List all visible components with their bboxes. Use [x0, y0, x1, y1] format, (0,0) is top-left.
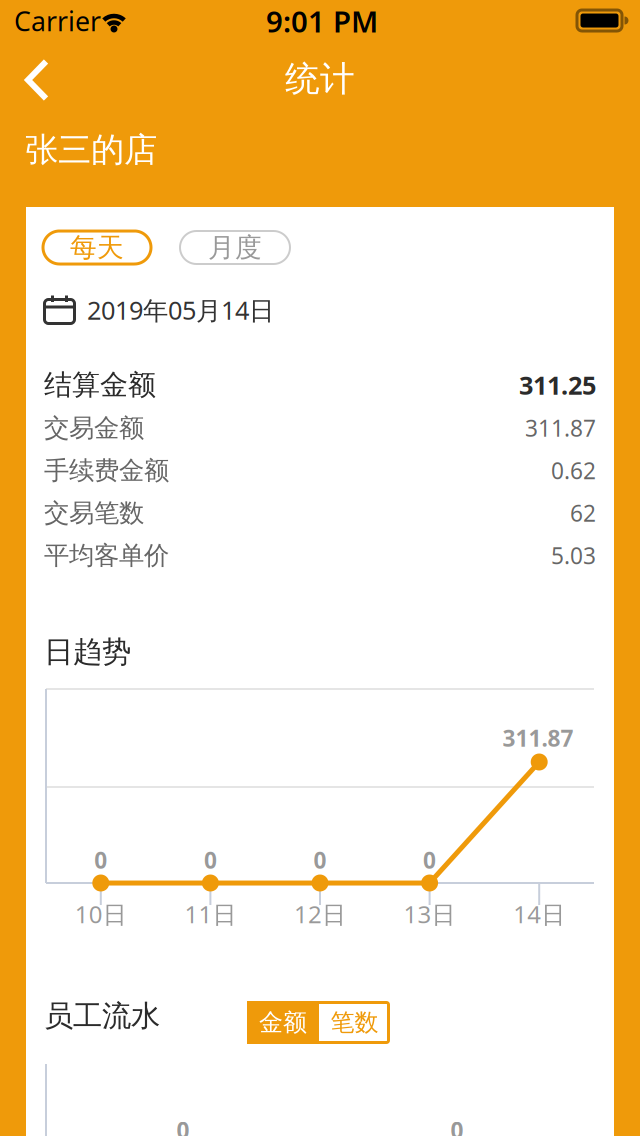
button[interactable]: 2019年05月14日 — [0, 293, 640, 327]
staticText: 0 — [313, 845, 326, 875]
staticText: 每天 — [70, 231, 124, 264]
staticText: 11日 — [184, 898, 236, 930]
staticText: 0 — [450, 1115, 463, 1136]
staticText: 5.03 — [551, 540, 596, 570]
staticText: 9:01 PM — [266, 1, 378, 40]
button[interactable]: 每天 — [43, 231, 151, 264]
staticText: 平均客单价 — [44, 540, 169, 571]
staticText: 员工流水 — [44, 998, 160, 1034]
staticText: 统计 — [285, 58, 355, 100]
staticText: 手续费金额 — [44, 455, 169, 486]
staticText: 结算金额 — [44, 368, 156, 402]
staticText: 0 — [176, 1115, 189, 1136]
staticText: Carrier — [14, 3, 101, 39]
staticText: 交易金额 — [44, 412, 144, 443]
staticText: 日趋势 — [44, 634, 131, 670]
staticText: 交易笔数 — [44, 497, 144, 528]
staticText: 金额 — [259, 1008, 307, 1037]
staticText: 张三的店 — [25, 129, 157, 170]
staticText: 0 — [94, 845, 107, 875]
staticText: 311.25 — [519, 368, 596, 402]
staticText: 0.62 — [551, 455, 596, 485]
staticText: 月度 — [208, 231, 262, 264]
staticText: 2019年05月14日 — [87, 293, 274, 327]
button[interactable]: 金额 — [247, 1001, 390, 1044]
staticText: 0 — [204, 845, 217, 875]
staticText: 12日 — [294, 898, 346, 930]
staticText: 0 — [423, 845, 436, 875]
staticText: 311.87 — [525, 413, 596, 443]
staticText: 笔数 — [330, 1008, 378, 1037]
button[interactable]: 月度 — [180, 231, 290, 264]
button[interactable] — [24, 58, 50, 101]
staticText: 311.87 — [502, 723, 573, 753]
staticText: 13日 — [404, 898, 456, 930]
staticText: 14日 — [513, 898, 565, 930]
staticText: 62 — [570, 498, 596, 528]
staticText: 10日 — [75, 898, 127, 930]
